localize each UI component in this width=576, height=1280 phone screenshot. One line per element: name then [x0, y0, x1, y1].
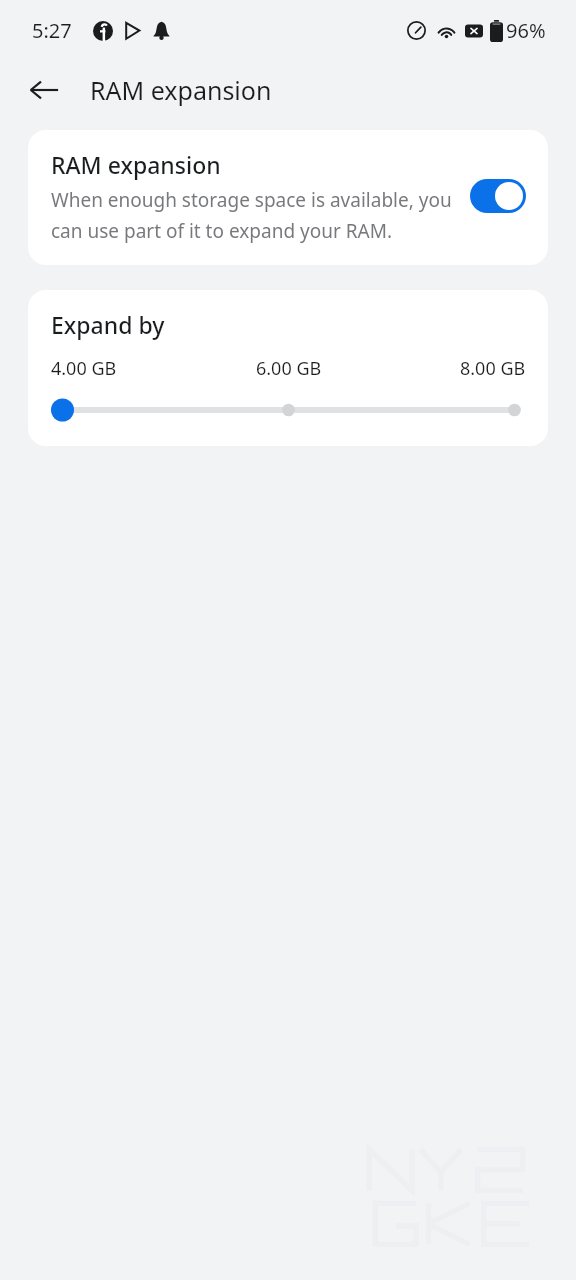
staticText: 6.00 GB: [256, 356, 322, 381]
button[interactable]: Toggle RAM expansion: [470, 179, 526, 213]
button[interactable]: Back: [17, 63, 71, 117]
staticText: RAM expansion: [51, 149, 221, 180]
staticText: 96%: [506, 17, 546, 44]
staticText: When enough storage space is available, …: [51, 187, 458, 243]
button[interactable]: Expand by amount: [51, 395, 526, 425]
staticText: 8.00 GB: [460, 356, 526, 381]
staticText: RAM expansion: [90, 73, 272, 107]
staticText: Expand by: [51, 309, 165, 340]
staticText: 4.00 GB: [51, 356, 117, 381]
staticText: 5:27: [32, 17, 72, 44]
button[interactable]: RAM expansion: [28, 130, 548, 265]
